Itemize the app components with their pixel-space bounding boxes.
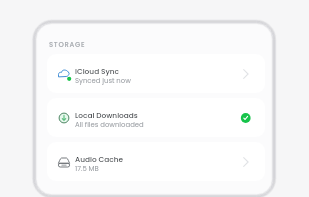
button[interactable]: iCloud Sync: [47, 54, 265, 93]
staticText: 17.5 MB: [75, 164, 99, 174]
staticText: Audio Cache: [75, 154, 124, 164]
staticText: STORAGE: [49, 40, 86, 50]
staticText: Local Downloads: [75, 110, 138, 120]
button[interactable]: Audio Cache: [47, 142, 265, 181]
button[interactable]: Local Downloads: [47, 98, 265, 137]
staticText: All files downloaded: [75, 120, 144, 130]
other: Open: [238, 67, 252, 81]
staticText: Synced just now: [75, 76, 131, 86]
staticText: iCloud Sync: [75, 66, 120, 76]
other: Open: [238, 155, 252, 169]
